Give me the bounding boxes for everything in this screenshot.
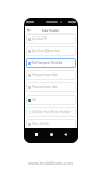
- button[interactable]: Recents: [33, 131, 40, 138]
- staticText: Edit Profile: [42, 28, 60, 32]
- button[interactable]: Passport issue date: [26, 82, 76, 92]
- button[interactable]: Date of birth: [26, 119, 76, 129]
- button[interactable]: Full Transport Checklist: [26, 58, 76, 68]
- staticText: Date of birth: [32, 122, 49, 126]
- button[interactable]: Uk Enter Your Phone Number: [26, 107, 76, 117]
- button[interactable]: Back: [26, 27, 31, 32]
- button[interactable]: UK: [26, 95, 76, 105]
- staticText: www.inclabtools.com: [28, 160, 73, 166]
- staticText: Passport issue date: [32, 85, 58, 89]
- button[interactable]: Passport issue date: [26, 70, 76, 80]
- staticText: UK: [32, 98, 36, 102]
- staticText: Passport issue date: [32, 73, 58, 77]
- staticText: Jane Doe (@jane.doe): [32, 49, 60, 53]
- staticText: Account Name: [32, 35, 46, 38]
- staticText: Uk Enter Your Phone Number: [32, 110, 71, 114]
- button[interactable]: Back: [62, 131, 69, 138]
- button[interactable]: Account Name: [26, 34, 76, 44]
- staticText: jane.doe19: [32, 37, 47, 41]
- button[interactable]: Home: [48, 131, 55, 138]
- staticText: Full Transport Checklist: [32, 61, 63, 65]
- button[interactable]: Jane Doe (@jane.doe): [26, 46, 76, 56]
